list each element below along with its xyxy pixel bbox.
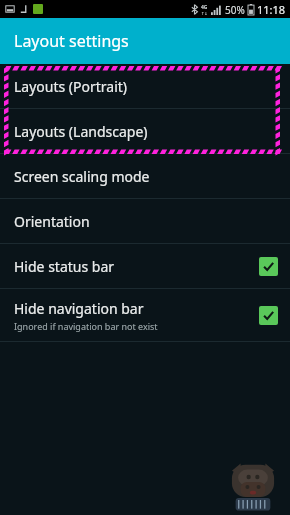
staticText: Layouts (Portrait) bbox=[14, 77, 128, 96]
button[interactable]: Orientation bbox=[0, 199, 290, 243]
button[interactable]: Screen scaling mode bbox=[0, 154, 290, 198]
staticText: Orientation bbox=[14, 212, 90, 231]
staticText: Screen scaling mode bbox=[14, 167, 150, 186]
button[interactable]: Enabled checkbox bbox=[259, 306, 278, 325]
staticText: Layout settings bbox=[14, 30, 129, 52]
button[interactable]: Enabled checkbox bbox=[259, 257, 278, 276]
staticText: Layouts (Landscape) bbox=[14, 122, 148, 141]
button[interactable]: Hide navigation bar bbox=[0, 289, 290, 341]
staticText: Ignored if navigation bar not exist bbox=[14, 320, 158, 332]
staticText: 50% bbox=[225, 3, 245, 17]
staticText: Hide status bar bbox=[14, 257, 115, 276]
button[interactable]: Layouts (Landscape) bbox=[0, 109, 290, 153]
button[interactable]: Layouts (Portrait) bbox=[0, 64, 290, 108]
staticText: ↑↓ bbox=[201, 11, 208, 16]
staticText: 4G bbox=[201, 4, 208, 11]
staticText: 11:18 bbox=[257, 2, 286, 17]
button[interactable]: Hide status bar bbox=[0, 244, 290, 288]
staticText: Hide navigation bar bbox=[14, 299, 144, 318]
